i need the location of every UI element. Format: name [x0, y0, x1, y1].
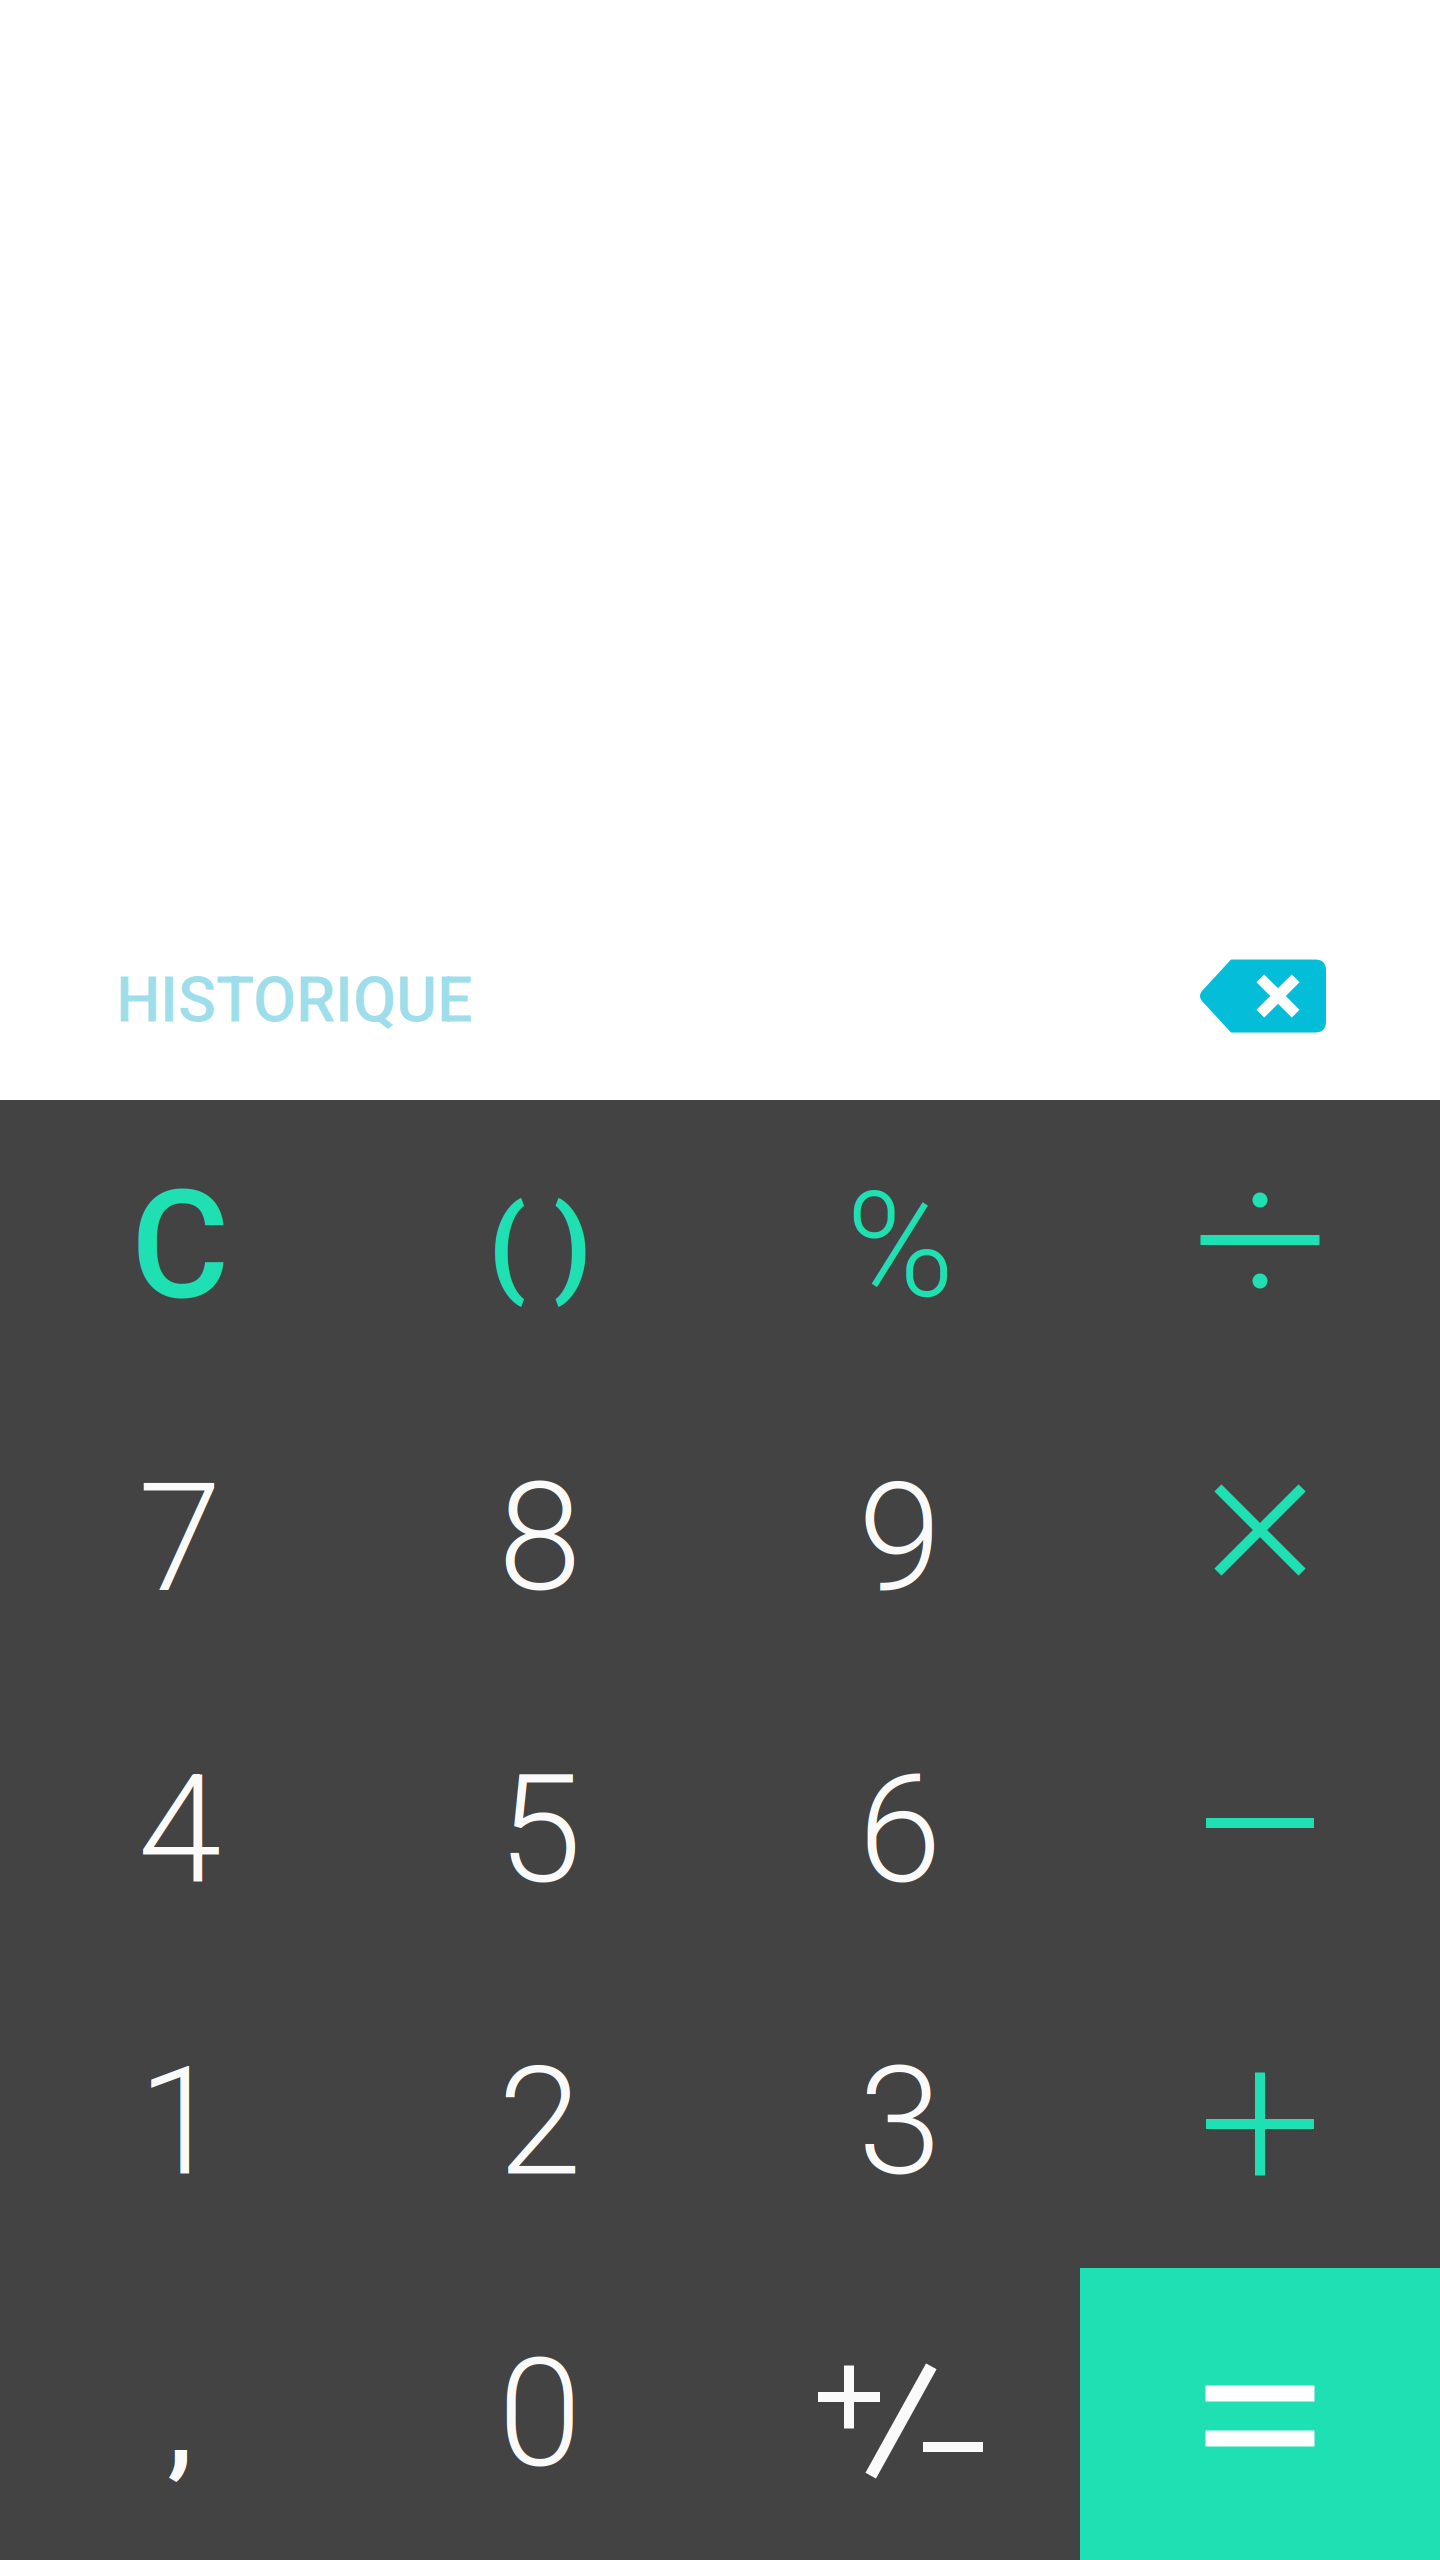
button[interactable]: HISTORIQUE — [0, 937, 512, 1063]
button[interactable]: 8 — [360, 1392, 720, 1684]
button[interactable]: 5 — [360, 1684, 720, 1976]
button[interactable]: Multiply — [1080, 1392, 1440, 1684]
button[interactable]: Percent — [720, 1100, 1080, 1392]
staticText: C — [131, 1158, 229, 1334]
button[interactable]: Decimal separator — [0, 2268, 360, 2560]
button[interactable]: 1 — [0, 1976, 360, 2268]
button[interactable]: Delete — [1198, 959, 1326, 1032]
button[interactable]: 6 — [720, 1684, 1080, 1976]
staticText: 5 — [498, 1742, 582, 1918]
staticText: % — [846, 1160, 954, 1332]
staticText: 6 — [858, 1742, 942, 1918]
button[interactable]: Divide — [1080, 1100, 1440, 1392]
staticText: 2 — [498, 2034, 582, 2210]
staticText: 3 — [858, 2034, 942, 2210]
button[interactable]: Plus or minus — [720, 2268, 1080, 2560]
button[interactable]: 0 — [360, 2268, 720, 2560]
button[interactable]: Plus — [1080, 1976, 1440, 2268]
button[interactable]: Minus — [1080, 1684, 1440, 1976]
button[interactable]: 7 — [0, 1392, 360, 1684]
staticText: ( ) — [488, 1183, 591, 1309]
staticText: 4 — [138, 1742, 222, 1918]
staticText: 8 — [498, 1450, 582, 1626]
button[interactable]: Clear — [0, 1100, 360, 1392]
button[interactable]: Equals — [1080, 2268, 1440, 2560]
staticText: 1 — [138, 2034, 222, 2210]
button[interactable]: 4 — [0, 1684, 360, 1976]
staticText: 7 — [138, 1450, 222, 1626]
staticText: HISTORIQUE — [116, 963, 472, 1037]
button[interactable]: 3 — [720, 1976, 1080, 2268]
staticText: 9 — [858, 1450, 942, 1626]
staticText: 0 — [498, 2326, 582, 2502]
button[interactable]: 9 — [720, 1392, 1080, 1684]
button[interactable]: Parentheses — [360, 1100, 720, 1392]
staticText: , — [167, 2354, 193, 2492]
button[interactable]: 2 — [360, 1976, 720, 2268]
